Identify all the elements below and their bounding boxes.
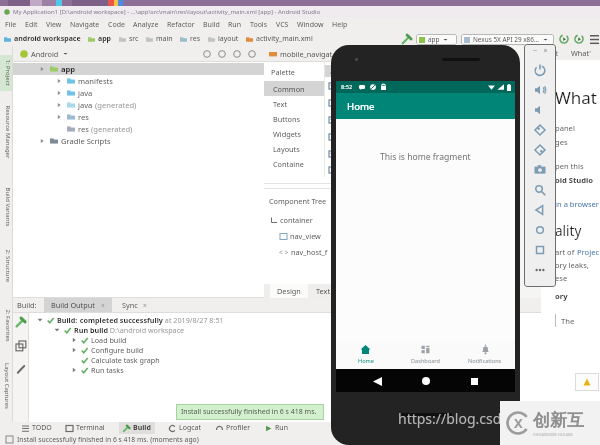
button[interactable]: Rerun [15,317,26,328]
button[interactable]: Rotate left [524,120,556,140]
button[interactable]: All [325,65,341,77]
button[interactable]: res [180,32,208,46]
button[interactable]: ant [541,48,565,58]
button[interactable]: Overview [524,240,556,260]
button[interactable]: Layout Captures [0,360,13,412]
button[interactable]: activity_main.xml [246,32,320,46]
button[interactable]: Configure build [29,345,600,355]
staticText: res [78,124,89,134]
button[interactable]: Rotate right [524,140,556,160]
button[interactable]: < > [264,247,341,257]
button[interactable]: Split [218,50,226,58]
button[interactable]: Inspections [575,373,599,391]
button[interactable]: Gradle Scripts [13,135,264,147]
button[interactable]: java [13,99,264,111]
button[interactable]: Pin [16,364,26,374]
button[interactable]: Refactor [163,18,199,32]
button[interactable]: Profiler [216,422,251,434]
button[interactable]: Resource Manager [0,104,13,160]
button[interactable]: Layout [590,35,599,44]
button[interactable]: Common [264,81,324,96]
button[interactable]: TODO [22,422,52,434]
button[interactable]: Recents [466,373,482,389]
button[interactable]: Build: [29,315,600,325]
button[interactable]: Widgets [264,126,324,141]
button[interactable]: Make project [401,34,412,45]
button[interactable]: Code [104,18,129,32]
button[interactable]: View [42,18,66,32]
button[interactable]: Build [119,422,155,434]
button[interactable]: Volume down [524,100,556,120]
button[interactable]: Settings [233,50,241,58]
button[interactable]: Home [336,340,395,369]
button[interactable]: What's [565,48,600,58]
button[interactable]: Run [574,34,584,44]
button[interactable]: Widget [325,162,341,177]
button[interactable]: Screenshot [524,160,556,180]
button[interactable]: Widget [325,94,341,111]
button[interactable]: More [524,260,556,280]
button[interactable]: File [1,18,21,32]
button[interactable]: java [13,87,264,99]
button[interactable]: Design [270,284,308,298]
button[interactable]: Widget [325,145,341,162]
button[interactable]: Run tasks [29,365,600,375]
button[interactable]: Load build [29,335,600,345]
button[interactable]: container [264,215,341,225]
button[interactable]: Text [308,284,338,298]
button[interactable]: Window [293,18,328,32]
button[interactable]: Widget [325,128,341,145]
button[interactable]: Run [265,422,289,434]
button[interactable]: Home [418,373,434,389]
button[interactable]: res [13,123,264,135]
button[interactable]: VCS [272,18,293,32]
button[interactable]: Edit [21,18,42,32]
button[interactable]: Run [559,34,569,44]
staticText: Calculate task graph [91,355,160,365]
button[interactable]: src [119,32,146,46]
button[interactable]: layout [208,32,246,46]
button[interactable]: Dashboard [395,340,455,369]
button[interactable]: Logcat [169,422,202,434]
button[interactable]: android workspace [4,32,88,46]
button[interactable]: Sync [120,298,149,312]
button[interactable]: Toggle view [16,341,26,351]
button[interactable]: Text [264,96,324,111]
button[interactable]: Collapse all [203,50,211,58]
button[interactable]: Build [199,18,224,32]
button[interactable]: Widget [325,77,341,94]
button[interactable]: Containe [264,156,324,171]
button[interactable]: app [416,34,457,45]
button[interactable]: Hide [248,50,256,58]
button[interactable]: Home [524,220,556,240]
button[interactable]: Tools [246,18,272,32]
button[interactable]: app [88,32,119,46]
button[interactable]: Nexus 5X API 29 x86... [461,34,554,45]
button[interactable]: app [13,63,264,75]
button[interactable]: 1: Project [0,55,13,91]
button[interactable]: Notifications [455,340,515,369]
button[interactable]: Navigate [66,18,104,32]
button[interactable]: Analyze [129,18,163,32]
button[interactable]: Back [524,200,556,220]
button[interactable]: Volume up [524,80,556,100]
button[interactable]: Run [224,18,246,32]
button[interactable]: Buttons [264,111,324,126]
button[interactable]: nav_view [264,231,341,241]
button[interactable]: Widget [325,111,341,128]
button[interactable]: Help [328,18,352,32]
button[interactable]: 2: Structure [0,244,13,288]
button[interactable]: Back [369,373,385,389]
button[interactable]: Build Variants [0,184,13,230]
button[interactable]: Power [524,60,556,80]
button[interactable]: main [146,32,180,46]
button[interactable]: 2: Favorites [0,304,13,348]
button[interactable]: manifests [13,75,264,87]
button[interactable]: Layouts [264,141,324,156]
button[interactable]: Zoom [524,180,556,200]
button[interactable]: Calculate task graph [29,355,600,365]
button[interactable]: Run build [29,325,600,335]
button[interactable]: res [13,111,264,123]
button[interactable]: Terminal [66,422,105,434]
button[interactable]: Build Output [44,298,112,312]
